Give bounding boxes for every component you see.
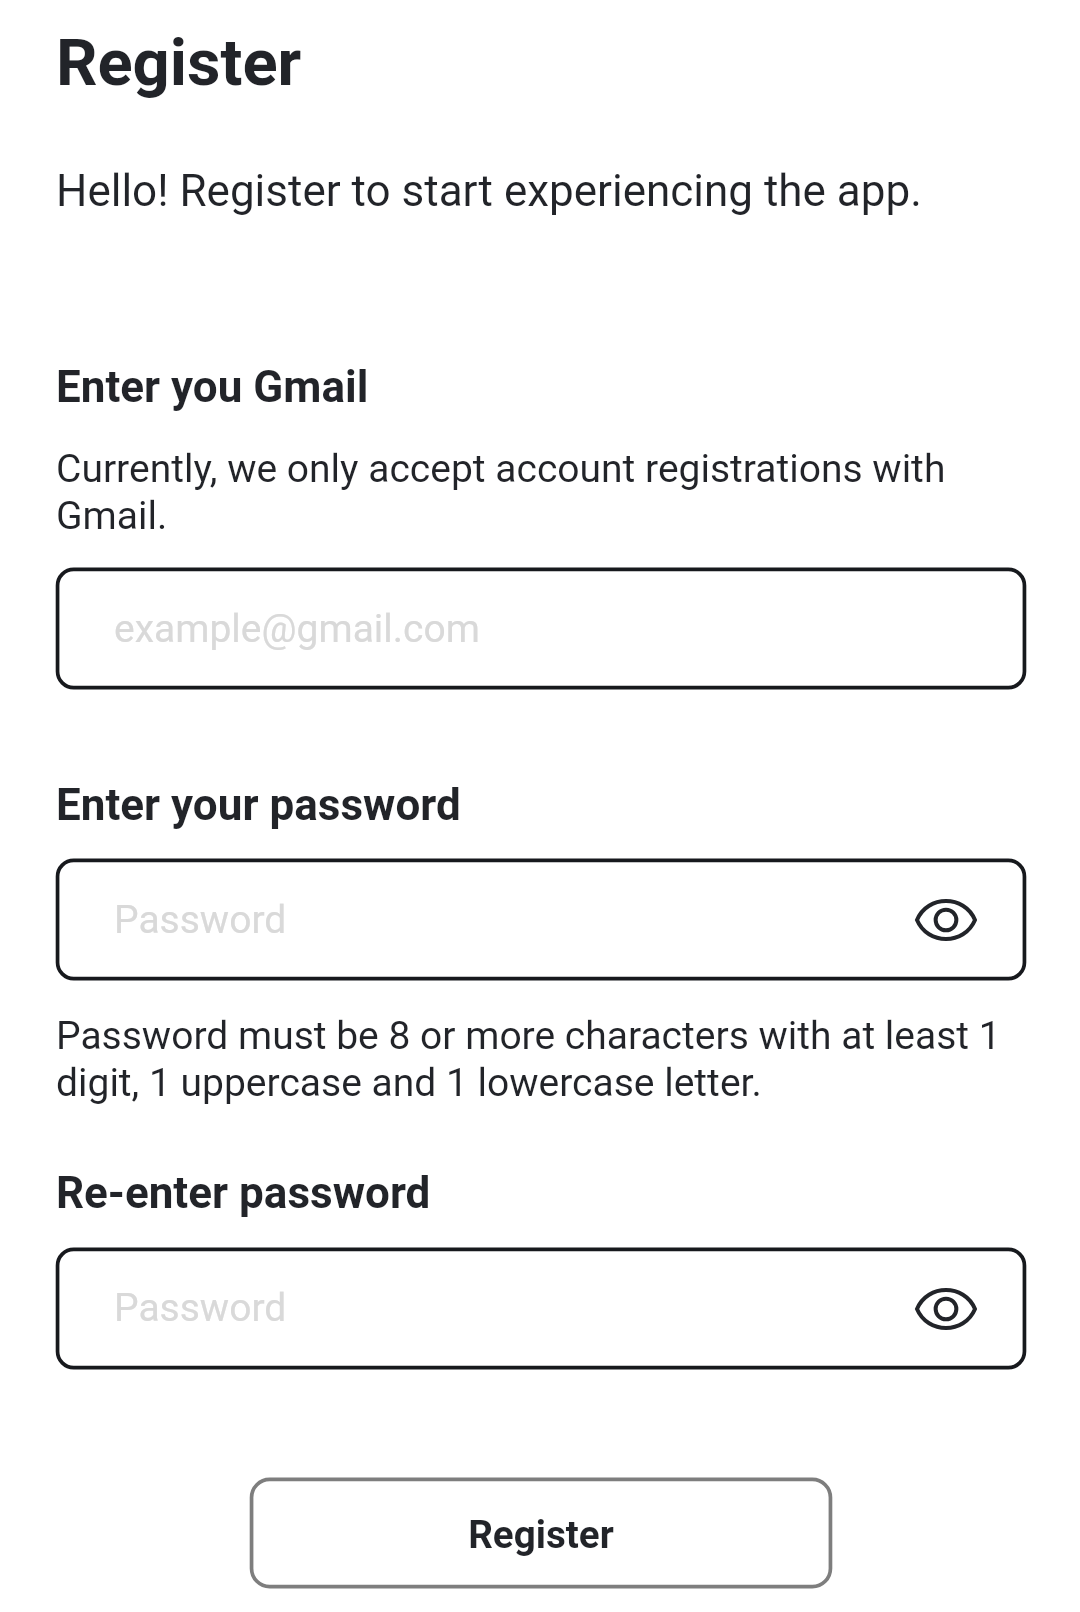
staticText: Currently, we only accept account regist…	[56, 446, 986, 539]
button[interactable]: Show password	[898, 872, 994, 968]
button[interactable]: Show password	[898, 1261, 994, 1357]
button[interactable]: Re-enter password field	[55, 1247, 1027, 1370]
staticText: Enter you Gmail	[56, 361, 369, 413]
button[interactable]: Register	[249, 1477, 833, 1589]
staticText: Register	[56, 25, 302, 101]
staticText: Password	[114, 1285, 287, 1331]
staticText: Password must be 8 or more characters wi…	[56, 1013, 1016, 1106]
staticText: Password	[114, 897, 287, 943]
staticText: example@gmail.com	[114, 606, 480, 652]
button[interactable]: Email address field	[55, 567, 1027, 690]
staticText: Enter your password	[56, 779, 461, 831]
staticText: Register	[468, 1512, 614, 1557]
staticText: Re-enter password	[56, 1167, 431, 1219]
staticText: Hello! Register to start experiencing th…	[56, 165, 922, 217]
button[interactable]: Password field	[55, 858, 1027, 981]
